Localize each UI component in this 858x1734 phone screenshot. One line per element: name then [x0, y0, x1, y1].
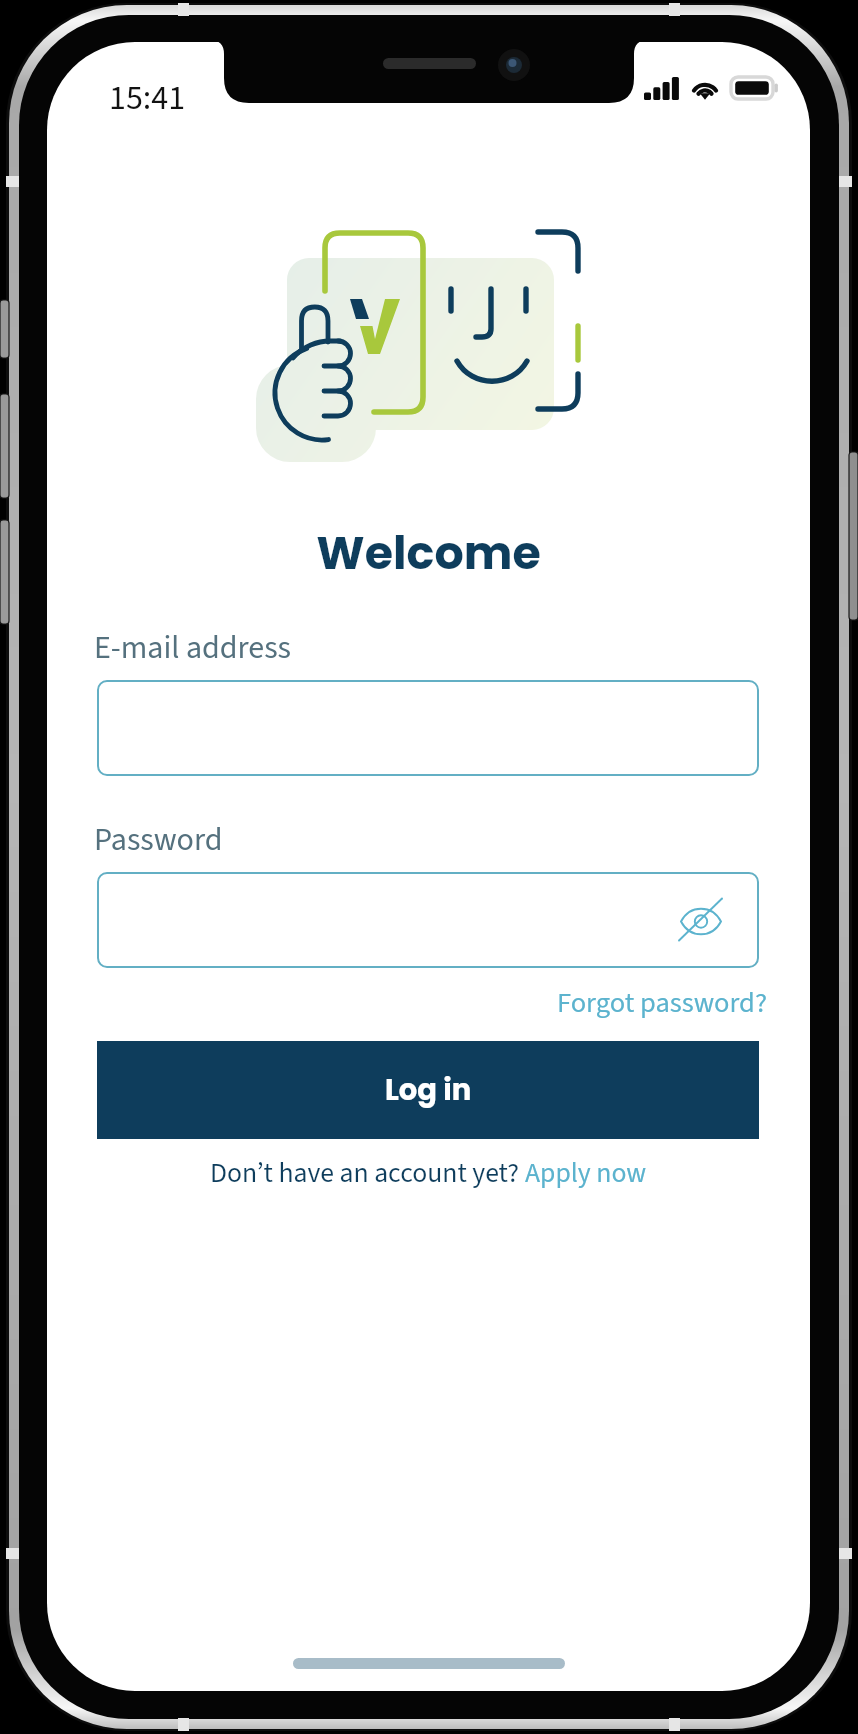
button[interactable]: Log in	[97, 1041, 759, 1139]
staticText: Welcome	[47, 521, 810, 585]
button[interactable]: Show password	[677, 892, 735, 950]
staticText: Don’t have an account yet?	[210, 1154, 525, 1193]
staticText: Log in	[385, 1070, 472, 1111]
staticText: 15:41	[109, 74, 186, 122]
button[interactable]: Forgot password?	[97, 983, 767, 1024]
button[interactable]: Apply now	[525, 1154, 647, 1193]
button[interactable]: Show password	[97, 872, 759, 968]
button[interactable]	[97, 680, 759, 776]
staticText: E-mail address	[94, 625, 292, 671]
staticText: Password	[94, 817, 223, 863]
